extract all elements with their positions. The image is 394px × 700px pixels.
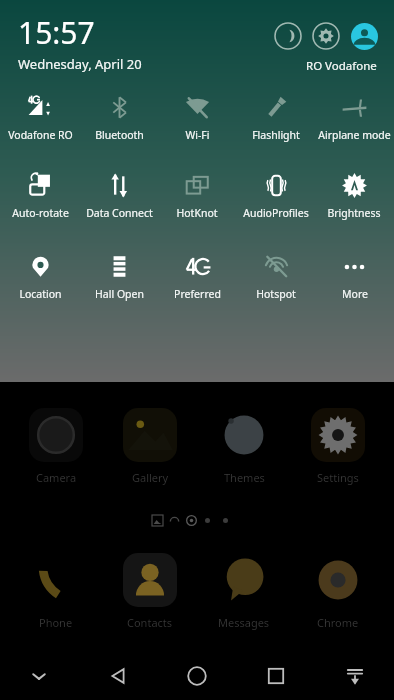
- staticText: Flashlight: [252, 128, 300, 142]
- staticText: Hall Open: [95, 287, 144, 301]
- staticText: Auto-rotate: [12, 206, 69, 220]
- staticText: Phone: [39, 615, 73, 630]
- staticText: Bluetooth: [95, 128, 144, 142]
- button[interactable]: Themes: [205, 408, 283, 490]
- button[interactable]: Location: [1, 249, 79, 311]
- staticText: 15:57: [18, 12, 95, 53]
- staticText: Brightness: [327, 206, 381, 220]
- button[interactable]: Wi-Fi: [158, 90, 236, 152]
- button[interactable]: Airplane mode: [315, 90, 393, 152]
- staticText: Contacts: [127, 615, 173, 630]
- button[interactable]: HotKnot: [158, 168, 236, 230]
- staticText: Themes: [224, 470, 265, 485]
- staticText: HotKnot: [176, 206, 218, 220]
- button[interactable]: Do not disturb: [272, 20, 304, 52]
- staticText: Settings: [317, 470, 359, 485]
- staticText: Vodafone RO: [8, 128, 73, 142]
- staticText: Messages: [218, 615, 270, 630]
- button[interactable]: Auto-rotate: [1, 168, 79, 230]
- staticText: More: [342, 287, 368, 301]
- staticText: AudioProfiles: [243, 206, 309, 220]
- button[interactable]: Messages: [205, 553, 283, 635]
- staticText: Wednesday, April 20: [18, 55, 142, 73]
- button[interactable]: Collapse: [17, 654, 61, 698]
- staticText: Gallery: [132, 470, 169, 485]
- button[interactable]: User profile: [348, 20, 380, 52]
- button[interactable]: Data Connect: [80, 168, 158, 230]
- button[interactable]: More: [315, 249, 393, 311]
- button[interactable]: Phone: [17, 553, 95, 635]
- button[interactable]: Home: [175, 654, 219, 698]
- button[interactable]: Brightness: [315, 168, 393, 230]
- staticText: RO Vodafone: [306, 58, 377, 74]
- button[interactable]: Hide notifications: [333, 654, 377, 698]
- button[interactable]: Chrome: [299, 553, 377, 635]
- button[interactable]: Hall Open: [80, 249, 158, 311]
- button[interactable]: Vodafone RO: [1, 90, 79, 152]
- staticText: Data Connect: [86, 206, 153, 220]
- staticText: Hotspot: [256, 287, 296, 301]
- staticText: Preferred: [174, 287, 221, 301]
- button[interactable]: Settings: [299, 408, 377, 490]
- staticText: Chrome: [317, 615, 359, 630]
- button[interactable]: Hotspot: [237, 249, 315, 311]
- staticText: Wi-Fi: [185, 128, 210, 142]
- button[interactable]: Recent apps: [254, 654, 298, 698]
- button[interactable]: Settings: [310, 20, 342, 52]
- button[interactable]: AudioProfiles: [237, 168, 315, 230]
- button[interactable]: Bluetooth: [80, 90, 158, 152]
- button[interactable]: Gallery: [111, 408, 189, 490]
- staticText: Camera: [36, 470, 77, 485]
- button[interactable]: Flashlight: [237, 90, 315, 152]
- staticText: Location: [19, 287, 62, 301]
- button[interactable]: Preferred: [158, 249, 236, 311]
- button[interactable]: Back: [96, 654, 140, 698]
- button[interactable]: Contacts: [111, 553, 189, 635]
- button[interactable]: Camera: [17, 408, 95, 490]
- staticText: Airplane mode: [318, 128, 391, 142]
